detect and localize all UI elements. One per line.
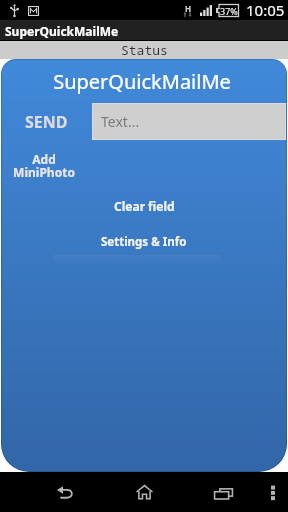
button[interactable]: Clear field <box>1 198 287 214</box>
button[interactable]: Settings & Info <box>1 234 287 250</box>
staticText: Settings & Info <box>101 234 187 250</box>
button[interactable]: SEND <box>1 103 92 140</box>
button[interactable]: More options <box>259 472 287 512</box>
staticText: SEND <box>25 111 68 133</box>
button[interactable]: Text... <box>92 103 286 140</box>
button[interactable]: Back <box>40 472 88 512</box>
staticText: 37% <box>220 5 238 17</box>
button[interactable]: Home <box>120 472 168 512</box>
staticText: H <box>185 3 192 14</box>
staticText: Clear field <box>114 198 175 214</box>
staticText: Status <box>121 41 168 59</box>
button[interactable]: Recent apps <box>199 472 247 512</box>
staticText: 10:05 <box>246 0 285 20</box>
staticText: SuperQuickMailMe <box>5 23 119 39</box>
staticText: Add MiniPhoto <box>13 151 75 181</box>
button[interactable]: Add MiniPhoto <box>13 151 75 181</box>
staticText: SuperQuickMailMe <box>1 68 285 95</box>
staticText: Text... <box>101 112 140 131</box>
